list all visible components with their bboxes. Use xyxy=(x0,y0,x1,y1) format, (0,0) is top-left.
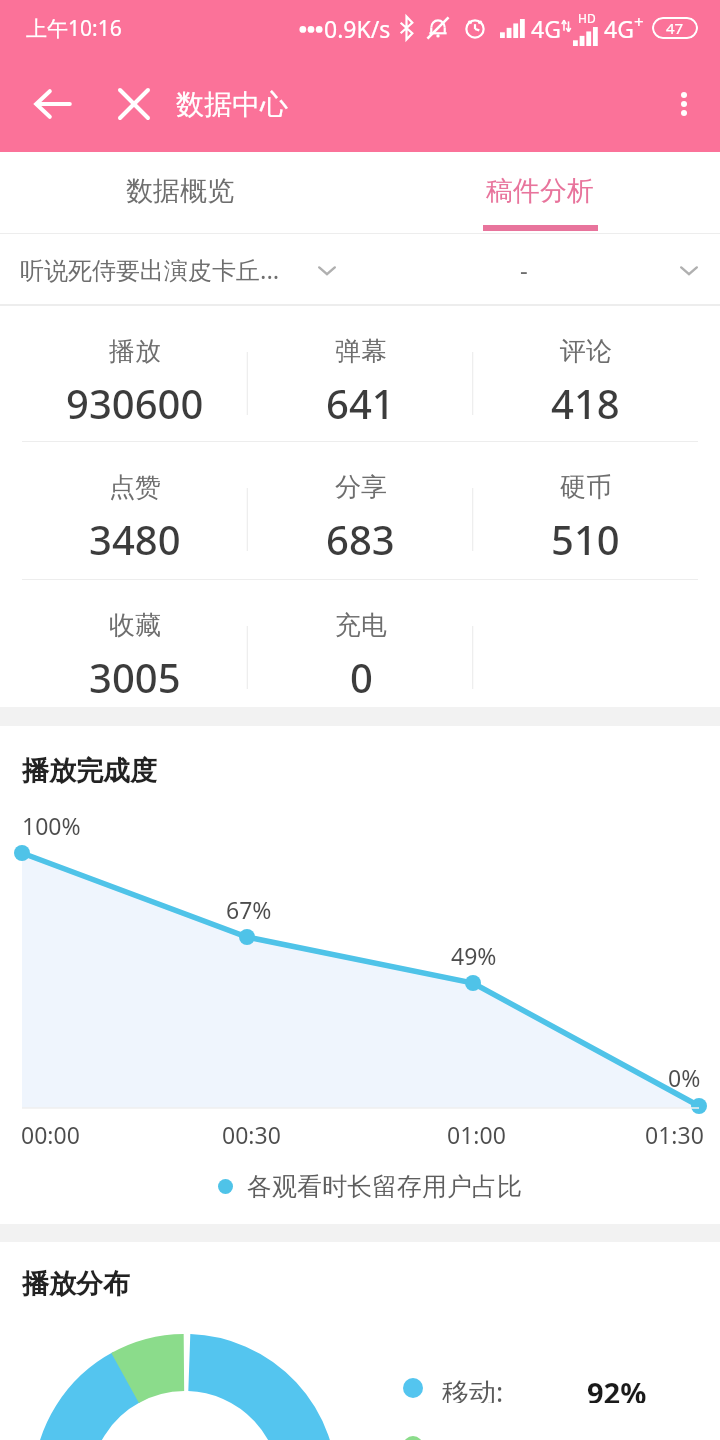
staticText: 播放完成度 xyxy=(22,754,157,788)
staticText: 收藏 xyxy=(109,609,161,642)
staticText: 01:00 xyxy=(447,1119,506,1150)
staticText: 稿件分析 xyxy=(486,174,594,208)
staticText: 移动: xyxy=(442,1373,504,1403)
staticText: 硬币 xyxy=(560,471,612,504)
staticText: 上午10:16 xyxy=(26,14,122,43)
staticText: 4G xyxy=(531,13,561,44)
staticText: 01:30 xyxy=(645,1119,704,1150)
button[interactable]: 听说死侍要出演皮卡丘... xyxy=(0,234,360,305)
staticText: 92% xyxy=(587,1373,647,1403)
staticText: 数据中心 xyxy=(176,87,288,122)
staticText: 4G xyxy=(604,13,634,44)
staticText: 3005 xyxy=(89,650,181,704)
staticText: 683 xyxy=(326,512,395,566)
staticText: + xyxy=(634,10,644,33)
staticText: 评论 xyxy=(560,335,612,368)
staticText: 00:00 xyxy=(21,1119,80,1150)
staticText: 67% xyxy=(226,894,272,925)
button[interactable]: Back xyxy=(0,56,106,152)
staticText: - xyxy=(520,253,528,286)
staticText: 充电 xyxy=(335,609,387,642)
staticText: 0.9K/s xyxy=(324,13,391,44)
staticText: 418 xyxy=(551,376,620,430)
staticText: 听说死侍要出演皮卡丘... xyxy=(20,253,280,286)
staticText: 3480 xyxy=(89,512,181,566)
staticText: 数据概览 xyxy=(126,174,234,208)
button[interactable]: More options xyxy=(648,56,720,152)
button[interactable]: 稿件分析 xyxy=(360,152,720,234)
staticText: 00:30 xyxy=(222,1119,281,1150)
staticText: 0 xyxy=(350,650,373,704)
staticText: 各观看时长留存用户占比 xyxy=(247,1171,522,1202)
staticText: 510 xyxy=(551,512,620,566)
staticText: HD xyxy=(578,10,596,26)
staticText: 930600 xyxy=(66,376,204,430)
staticText: 100% xyxy=(22,810,81,841)
staticText: 播放 xyxy=(109,335,161,368)
staticText: 分享 xyxy=(335,471,387,504)
button[interactable]: 数据概览 xyxy=(0,152,360,234)
button[interactable]: - xyxy=(360,234,720,305)
staticText: 49% xyxy=(451,940,497,971)
staticText: 弹幕 xyxy=(335,335,387,368)
staticText: 0% xyxy=(668,1062,701,1093)
staticText: 点赞 xyxy=(109,471,161,504)
staticText: 47 xyxy=(666,18,684,38)
button[interactable]: Close xyxy=(106,56,162,152)
staticText: 641 xyxy=(326,376,395,430)
staticText: 播放分布 xyxy=(22,1267,130,1301)
